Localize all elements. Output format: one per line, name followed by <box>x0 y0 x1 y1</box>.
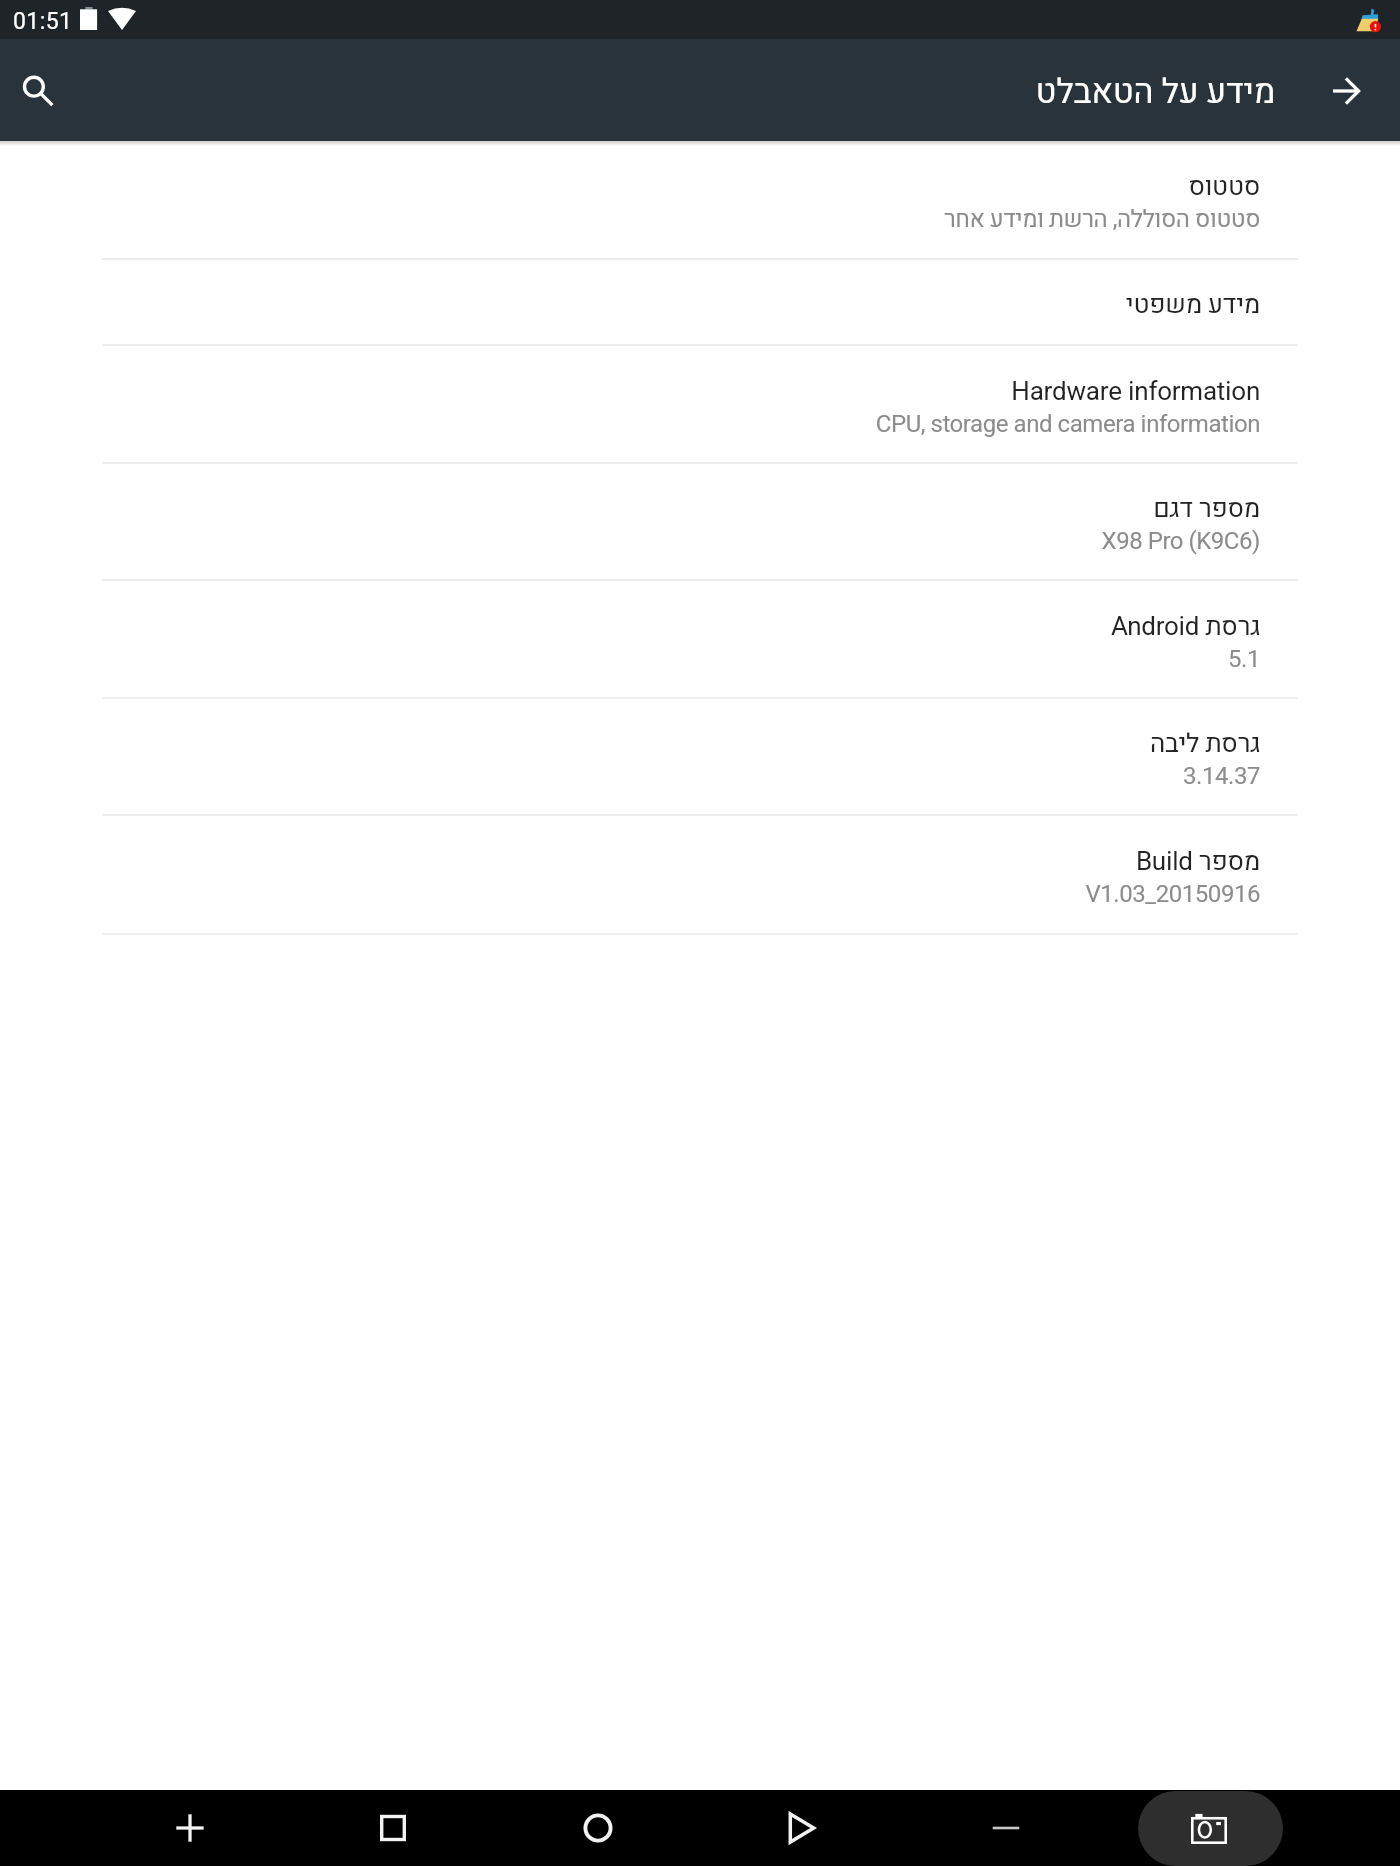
staticText: 01:51 <box>13 5 73 39</box>
staticText: Hardware information <box>1011 373 1260 411</box>
staticText: V1.03_20150916 <box>1085 877 1260 912</box>
staticText: גרסת Android <box>1111 608 1260 646</box>
button[interactable]: Search <box>4 57 64 117</box>
staticText: מידע משפטי <box>1125 286 1260 324</box>
staticText: CPU, storage and camera information <box>875 407 1260 442</box>
button[interactable]: מספר דגם <box>0 463 1400 581</box>
button[interactable]: מידע משפטי <box>0 259 1400 346</box>
staticText: סטטוס הסוללה, הרשת ומידע אחר <box>943 202 1260 237</box>
button[interactable]: Home <box>563 1793 633 1863</box>
button[interactable]: סטטוס <box>0 141 1400 259</box>
staticText: 5.1 <box>1228 642 1260 677</box>
button[interactable]: Back <box>767 1793 837 1863</box>
button[interactable]: Add <box>155 1793 225 1863</box>
button[interactable]: Hide navigation bar <box>971 1793 1041 1863</box>
button[interactable]: Navigate back <box>1319 63 1375 119</box>
button[interactable]: Recent apps <box>358 1793 428 1863</box>
staticText: גרסת ליבה <box>1149 725 1260 763</box>
staticText: 3.14.37 <box>1183 759 1260 794</box>
staticText: סטטוס <box>1188 168 1260 206</box>
button[interactable]: Hardware information <box>0 346 1400 464</box>
staticText: X98 Pro (K9C6) <box>1101 524 1260 559</box>
button[interactable]: מספר Build <box>0 816 1400 934</box>
staticText: מספר דגם <box>1153 490 1260 528</box>
staticText: מספר Build <box>1135 843 1260 881</box>
button[interactable]: גרסת Android <box>0 581 1400 699</box>
button[interactable]: Screenshot <box>1138 1791 1283 1866</box>
staticText: מידע על הטאבלט <box>1035 67 1275 117</box>
button[interactable]: גרסת ליבה <box>0 698 1400 816</box>
